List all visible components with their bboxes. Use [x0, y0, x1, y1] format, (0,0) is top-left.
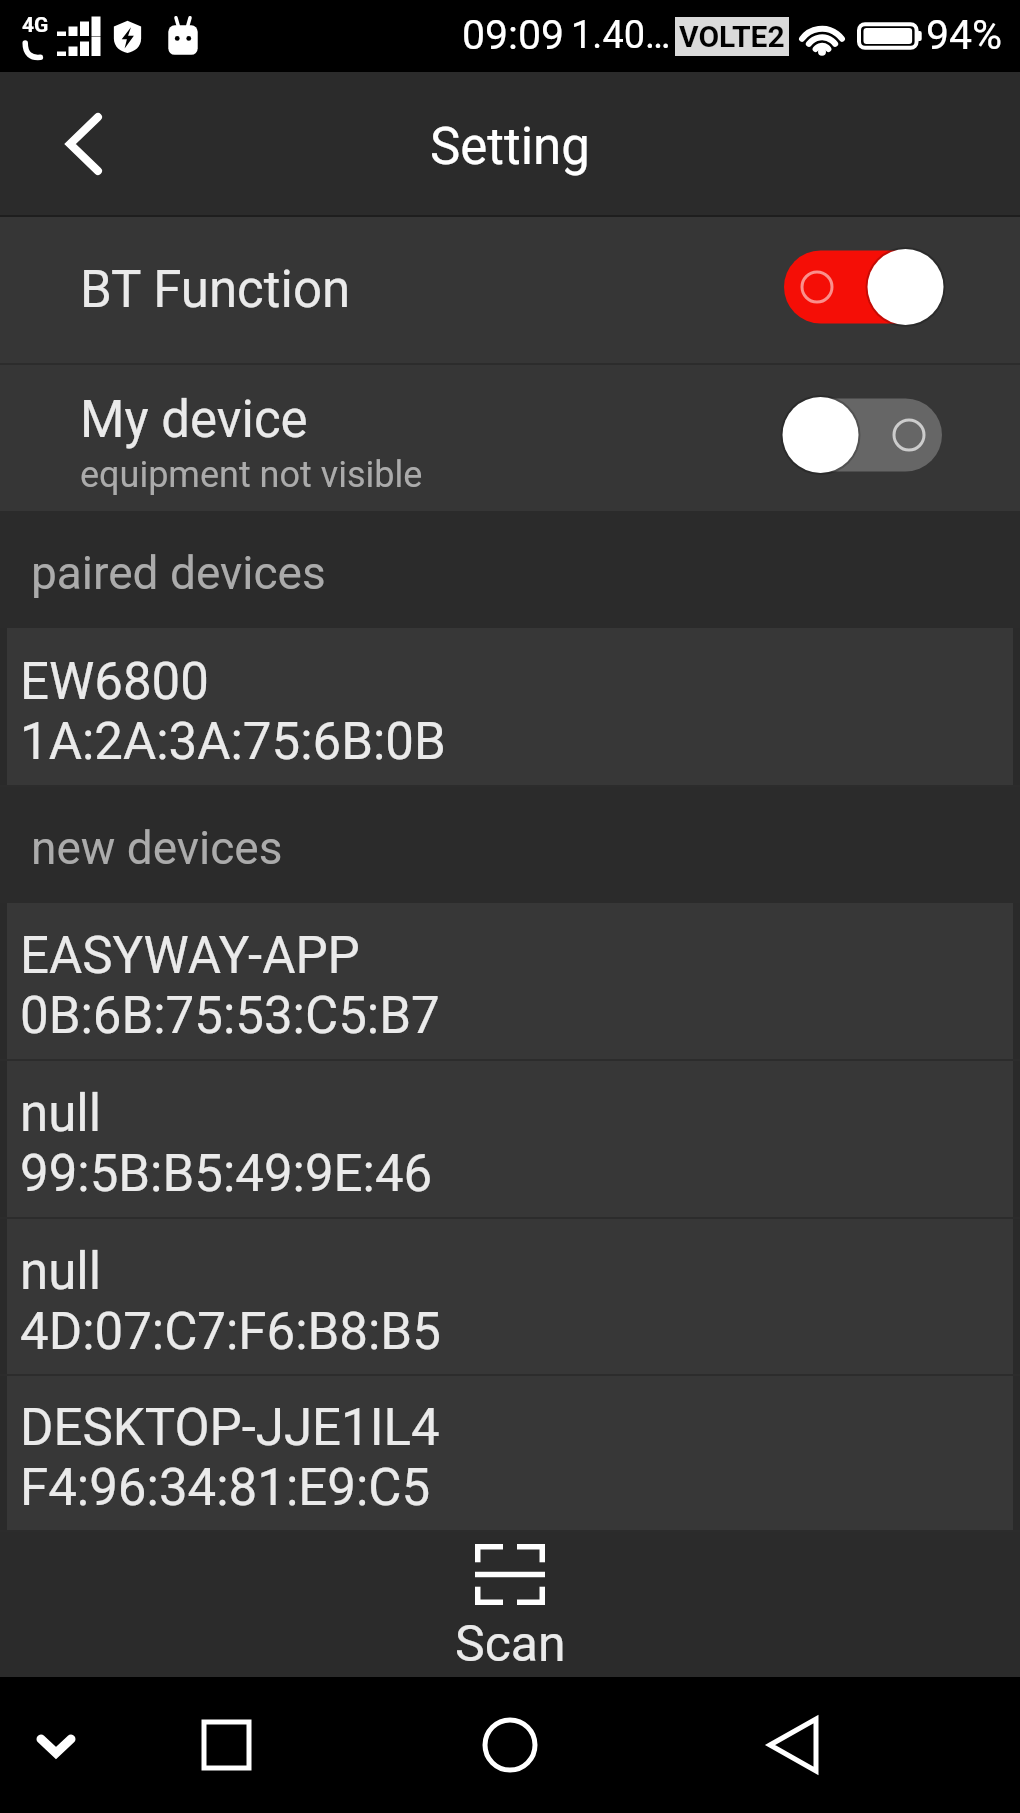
- staticText: 0B:6B:75:53:C5:B7: [20, 986, 440, 1046]
- staticText: VOLTE2: [679, 19, 785, 54]
- staticText: equipment not visible: [80, 454, 423, 496]
- staticText: DESKTOP-JJE1IL4: [20, 1398, 440, 1458]
- button[interactable]: Hide keyboard: [1, 1677, 111, 1813]
- staticText: Setting: [430, 117, 590, 177]
- staticText: My device: [80, 390, 308, 450]
- staticText: BT Function: [80, 260, 351, 320]
- staticText: null: [20, 1242, 102, 1302]
- staticText: 4G: [22, 13, 49, 38]
- button[interactable]: Switch on: [784, 247, 942, 327]
- button[interactable]: EW6800: [7, 628, 1013, 787]
- staticText: Scan: [455, 1615, 566, 1674]
- staticText: 94%: [926, 11, 1003, 59]
- staticText: 1A:2A:3A:75:6B:0B: [20, 712, 446, 772]
- staticText: 1.40…: [571, 13, 671, 58]
- button[interactable]: DESKTOP-JJE1IL4: [7, 1376, 1013, 1532]
- staticText: EW6800: [20, 652, 209, 712]
- staticText: 4D:07:C7:F6:B8:B5: [20, 1302, 441, 1362]
- button[interactable]: Switch off: [784, 395, 942, 475]
- button[interactable]: EASYWAY-APP: [7, 903, 1013, 1061]
- button[interactable]: null: [7, 1061, 1013, 1219]
- staticText: F4:96:34:81:E9:C5: [20, 1458, 431, 1518]
- button[interactable]: Back: [739, 1677, 849, 1813]
- button[interactable]: Recent apps: [171, 1677, 281, 1813]
- button[interactable]: BT Function: [0, 217, 1020, 363]
- staticText: null: [20, 1084, 102, 1144]
- button[interactable]: Back: [0, 72, 167, 215]
- staticText: paired devices: [31, 546, 326, 600]
- staticText: 99:5B:B5:49:9E:46: [20, 1144, 433, 1204]
- staticText: EASYWAY-APP: [20, 926, 360, 986]
- button[interactable]: My device: [0, 365, 1020, 511]
- staticText: new devices: [31, 821, 283, 875]
- button[interactable]: Home: [455, 1677, 565, 1813]
- button[interactable]: null: [7, 1219, 1013, 1376]
- button[interactable]: Scan: [0, 1532, 1020, 1677]
- staticText: 09:09: [462, 11, 565, 59]
